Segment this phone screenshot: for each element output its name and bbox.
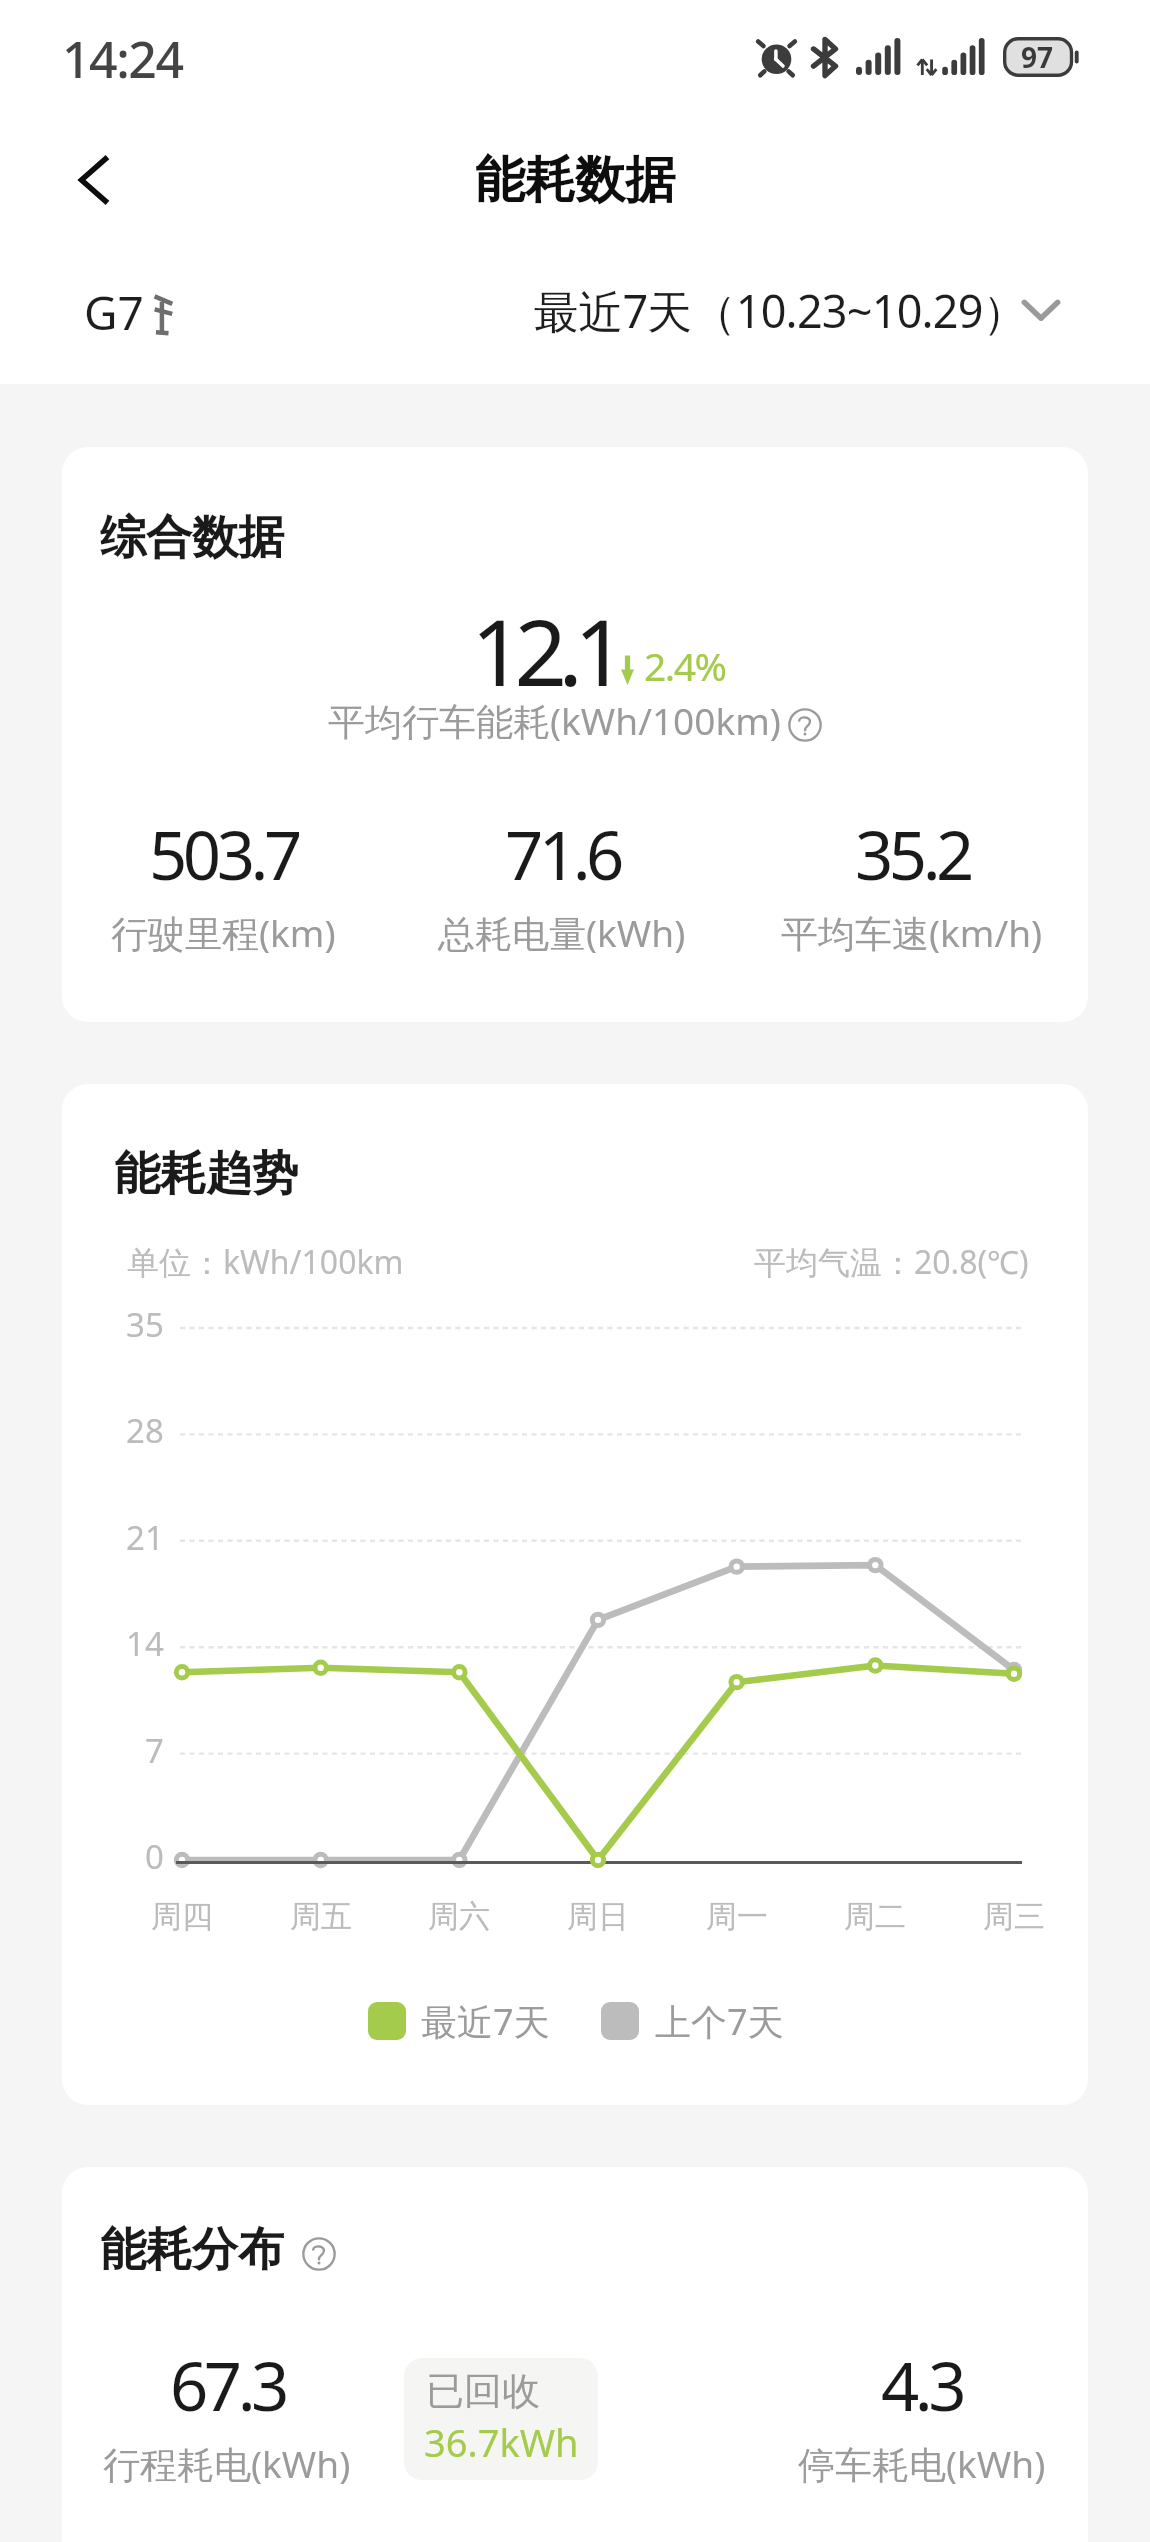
staticText: G7	[84, 281, 144, 344]
staticText: 36.7kWh	[424, 2416, 579, 2468]
button[interactable]: Help: energy distribution	[302, 2237, 336, 2271]
staticText: 平均气温：20.8(℃)	[754, 1240, 1029, 1284]
staticText: 上个7天	[655, 1997, 784, 2046]
staticText: 周五	[290, 1897, 352, 1936]
staticText: 503.7	[149, 808, 298, 899]
button[interactable]: G7	[72, 271, 186, 354]
button[interactable]: Back	[50, 135, 140, 225]
staticText: 97	[1021, 38, 1054, 76]
staticText: 平均行车能耗(kWh/100km)	[328, 695, 781, 746]
staticText: 28	[126, 1408, 164, 1453]
button[interactable]: 最近7天（10.23~10.29）	[534, 262, 1027, 358]
staticText: 周二	[844, 1897, 906, 1936]
staticText: 2.4%	[644, 639, 726, 692]
staticText: 12.1	[471, 588, 618, 713]
staticText: 行驶里程(km)	[111, 907, 336, 958]
staticText: 67.3	[170, 2339, 285, 2430]
button[interactable]: Help: average driving consumption	[788, 708, 822, 742]
staticText: 平均车速(km/h)	[781, 907, 1043, 958]
staticText: 21	[126, 1515, 164, 1560]
staticText: 35.2	[855, 808, 970, 899]
staticText: 能耗数据	[475, 149, 675, 212]
staticText: 停车耗电(kWh)	[798, 2438, 1046, 2489]
staticText: 总耗电量(kWh)	[438, 907, 686, 958]
staticText: 行程耗电(kWh)	[103, 2438, 351, 2489]
staticText: 14:24	[62, 25, 183, 93]
staticText: 单位：kWh/100km	[127, 1240, 404, 1284]
staticText: 周三	[983, 1897, 1045, 1936]
staticText: 能耗趋势	[114, 1145, 298, 1203]
staticText: 最近7天	[421, 1997, 550, 2046]
staticText: 综合数据	[100, 509, 284, 567]
staticText: 14	[126, 1621, 164, 1666]
staticText: 已回收	[426, 2367, 540, 2415]
staticText: 4.3	[881, 2339, 963, 2430]
staticText: 71.6	[505, 808, 620, 899]
staticText: 周日	[567, 1897, 629, 1936]
staticText: 7	[145, 1728, 164, 1773]
staticText: 35	[126, 1302, 164, 1347]
button[interactable]: Change date range	[1006, 280, 1076, 340]
staticText: 周四	[151, 1897, 213, 1936]
staticText: 能耗分布	[100, 2221, 284, 2279]
staticText: 周六	[428, 1897, 490, 1936]
staticText: 周一	[706, 1897, 768, 1936]
staticText: 最近7天（10.23~10.29）	[534, 280, 1027, 341]
staticText: 0	[145, 1834, 164, 1879]
